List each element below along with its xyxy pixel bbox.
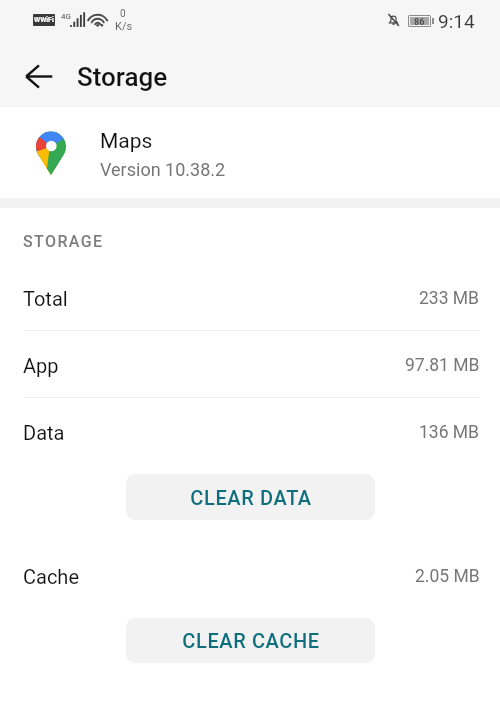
staticText: CLEAR DATA (190, 486, 312, 509)
button[interactable]: Total (0, 273, 500, 323)
button[interactable]: Cache (0, 551, 500, 601)
button[interactable]: Maps (0, 107, 500, 198)
staticText: WWiFi (34, 16, 54, 24)
staticText: 136 MB (419, 422, 480, 443)
staticText: 97.81 MB (405, 355, 480, 376)
button[interactable]: CLEAR DATA (126, 474, 375, 520)
button[interactable]: Data (0, 407, 500, 457)
staticText: CLEAR CACHE (182, 629, 320, 652)
staticText: 9:14 (438, 10, 475, 32)
staticText: K/s (115, 20, 133, 33)
staticText: Cache (23, 565, 79, 588)
staticText: 86 (414, 17, 425, 25)
staticText: 4G (61, 12, 71, 21)
staticText: Total (23, 287, 68, 310)
staticText: STORAGE (23, 232, 104, 251)
staticText: App (23, 354, 59, 377)
staticText: Maps (100, 129, 153, 154)
button[interactable]: Back (13, 51, 64, 102)
staticText: 2.05 MB (415, 566, 480, 587)
staticText: Data (23, 421, 65, 444)
button[interactable]: CLEAR CACHE (126, 618, 375, 663)
button[interactable]: App (0, 340, 500, 390)
staticText: Version 10.38.2 (100, 159, 226, 180)
staticText: 0 (120, 8, 126, 20)
staticText: Storage (77, 62, 168, 92)
staticText: 233 MB (419, 288, 480, 309)
